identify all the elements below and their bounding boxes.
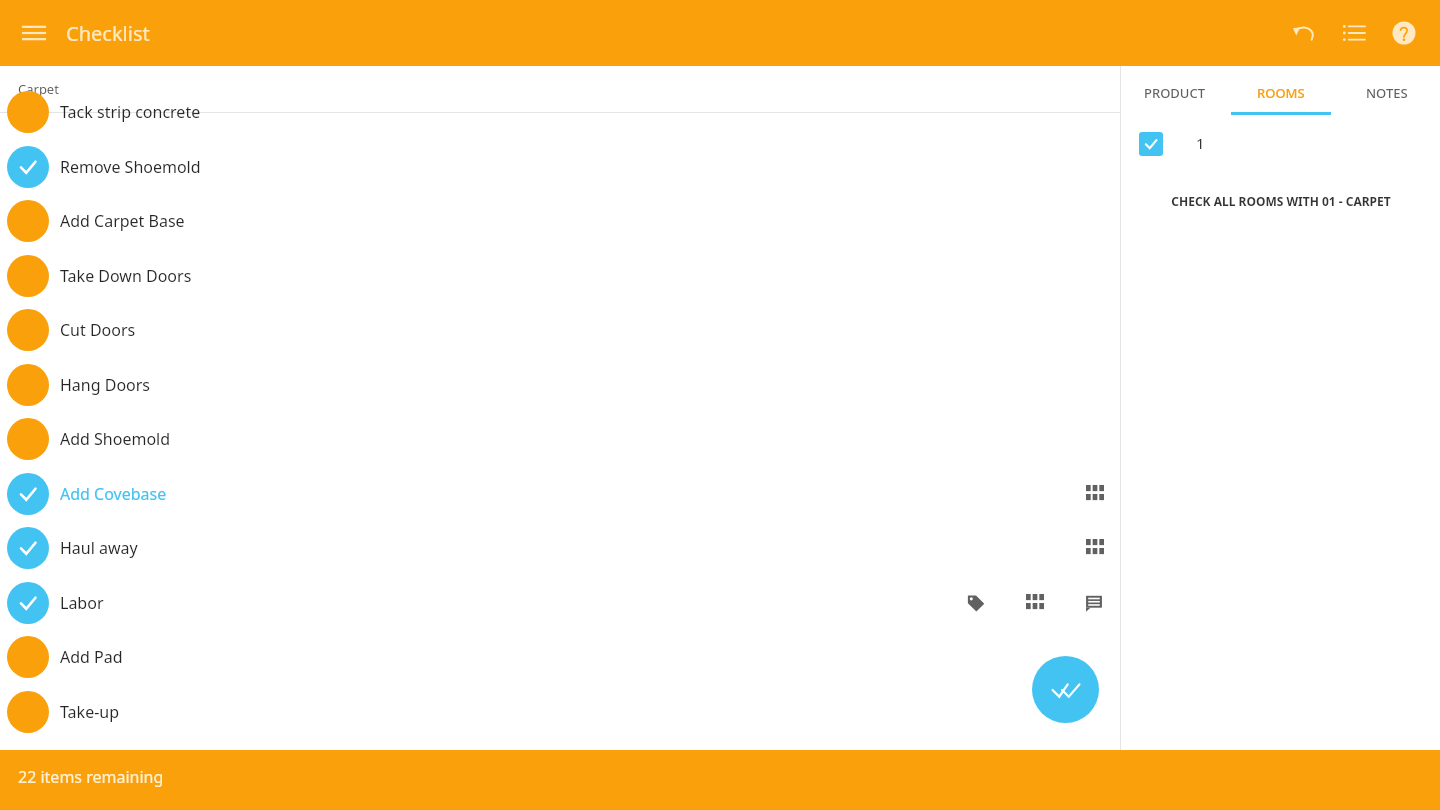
button[interactable]: Hang Doors bbox=[0, 358, 1120, 412]
staticText: Carpet bbox=[18, 80, 59, 98]
button[interactable]: Add Shoemold bbox=[0, 412, 1120, 466]
staticText: Haul away bbox=[60, 537, 138, 559]
staticText: Labor bbox=[60, 592, 104, 614]
staticText: Tack strip concrete bbox=[60, 101, 201, 123]
button[interactable]: Help bbox=[1382, 11, 1426, 55]
button[interactable]: Undo bbox=[1282, 11, 1326, 55]
button[interactable]: PRODUCT bbox=[1121, 66, 1228, 118]
button[interactable]: Add Pad bbox=[0, 630, 1120, 684]
button[interactable]: NOTES bbox=[1334, 66, 1440, 118]
staticText: Take Down Doors bbox=[60, 265, 192, 287]
staticText: Remove Shoemold bbox=[60, 156, 201, 178]
button[interactable]: List view bbox=[1332, 11, 1376, 55]
button[interactable]: Check all items bbox=[1032, 656, 1099, 723]
button[interactable]: Haul away bbox=[0, 521, 1120, 575]
staticText: 22 items remaining bbox=[18, 766, 164, 788]
staticText: Take-up bbox=[60, 701, 120, 723]
button[interactable]: chat bbox=[1082, 591, 1106, 615]
button[interactable]: CHECK ALL ROOMS WITH 01 - CARPET bbox=[1121, 184, 1440, 218]
button[interactable]: 22 items remaining bbox=[0, 750, 1440, 810]
staticText: CHECK ALL ROOMS WITH 01 - CARPET bbox=[1171, 193, 1391, 209]
button[interactable]: Open navigation menu bbox=[12, 11, 56, 55]
button[interactable]: grid bbox=[1083, 536, 1107, 560]
staticText: Add Covebase bbox=[60, 483, 167, 505]
button[interactable]: Add Covebase bbox=[0, 467, 1120, 521]
button[interactable]: ROOMS bbox=[1228, 66, 1334, 118]
button[interactable]: Cut Doors bbox=[0, 303, 1120, 357]
button[interactable]: Tack strip concrete bbox=[0, 85, 1120, 139]
staticText: 1 bbox=[1196, 133, 1205, 153]
button[interactable]: Add Carpet Base bbox=[0, 194, 1120, 248]
button[interactable]: Room 1 selected bbox=[1139, 132, 1163, 156]
staticText: PRODUCT bbox=[1144, 84, 1205, 102]
button[interactable]: Labor bbox=[0, 576, 1120, 630]
button[interactable]: grid bbox=[1023, 591, 1047, 615]
staticText: Add Pad bbox=[60, 646, 123, 668]
button[interactable]: Take-up bbox=[0, 685, 1120, 739]
button[interactable]: Take Down Doors bbox=[0, 249, 1120, 303]
staticText: Add Carpet Base bbox=[60, 210, 185, 232]
staticText: NOTES bbox=[1366, 84, 1408, 102]
staticText: ROOMS bbox=[1257, 84, 1305, 102]
button[interactable]: tag bbox=[964, 591, 988, 615]
staticText: Cut Doors bbox=[60, 319, 136, 341]
staticText: Hang Doors bbox=[60, 374, 151, 396]
button[interactable]: grid bbox=[1083, 482, 1107, 506]
staticText: Checklist bbox=[66, 20, 150, 47]
staticText: Add Shoemold bbox=[60, 428, 171, 450]
button[interactable]: Remove Shoemold bbox=[0, 140, 1120, 194]
